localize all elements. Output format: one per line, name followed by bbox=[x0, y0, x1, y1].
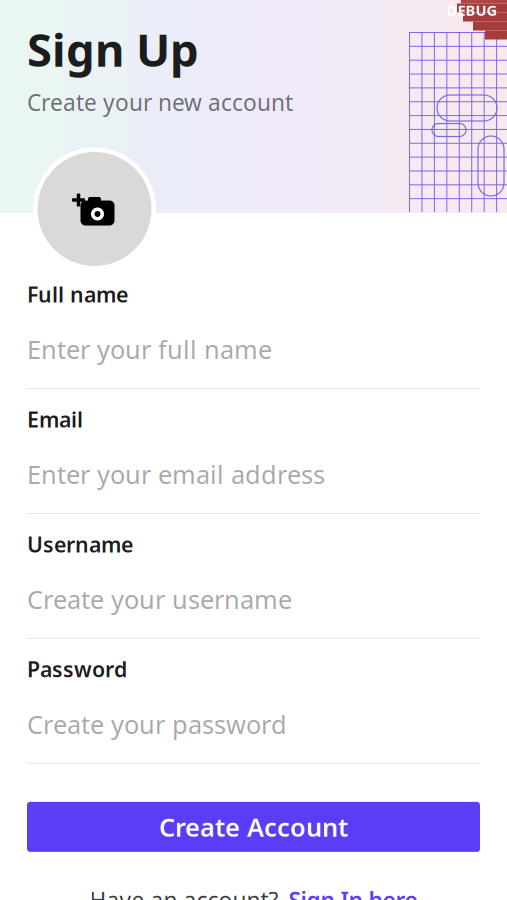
staticText: Create your username bbox=[27, 582, 292, 616]
button[interactable]: Password bbox=[0, 655, 507, 780]
staticText: Have an account? bbox=[89, 885, 278, 900]
button[interactable]: Email bbox=[0, 405, 507, 530]
button[interactable]: Full name bbox=[0, 280, 507, 405]
staticText: Username bbox=[27, 530, 133, 558]
staticText: Sign In here bbox=[288, 885, 417, 900]
staticText: Email bbox=[27, 405, 83, 433]
staticText: Create Account bbox=[159, 810, 348, 844]
staticText: Create your password bbox=[27, 707, 287, 741]
button[interactable]: Add profile photo bbox=[33, 147, 156, 270]
button[interactable]: Have an account? bbox=[0, 875, 507, 900]
staticText: Full name bbox=[27, 280, 128, 308]
staticText: DEBUG bbox=[446, 0, 497, 20]
staticText: Enter your full name bbox=[27, 332, 272, 366]
staticText: Sign Up bbox=[27, 19, 199, 79]
staticText: Create your new account bbox=[27, 87, 293, 117]
staticText: Password bbox=[27, 655, 127, 683]
staticText: Enter your email address bbox=[27, 457, 325, 491]
button[interactable]: Create Account bbox=[27, 802, 480, 852]
button[interactable]: Username bbox=[0, 530, 507, 655]
